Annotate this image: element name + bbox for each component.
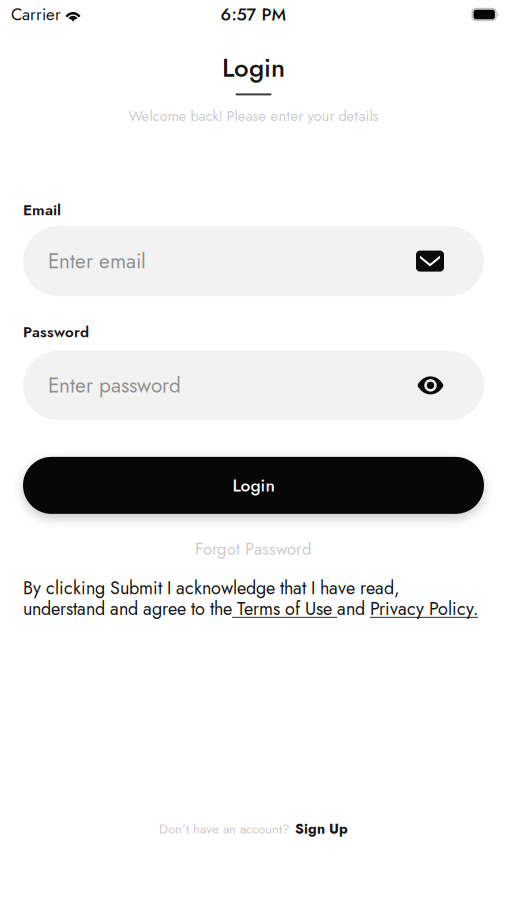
staticText: Enter password xyxy=(48,370,181,400)
staticText: 6:57 PM xyxy=(220,2,286,27)
staticText: Login xyxy=(222,49,285,86)
staticText: Sign Up xyxy=(295,819,348,839)
staticText: Email xyxy=(23,199,61,221)
button[interactable]: Sign Up xyxy=(295,819,348,839)
staticText: Login xyxy=(232,473,274,498)
staticText: understand and agree to the Terms of Use… xyxy=(23,596,478,622)
staticText: Carrier xyxy=(11,2,61,27)
staticText: Password xyxy=(23,321,89,343)
button[interactable]: Login xyxy=(23,457,484,514)
staticText: Enter email xyxy=(48,246,146,276)
staticText: Welcome back! Please enter your details xyxy=(128,105,378,127)
staticText: By clicking Submit I acknowledge that I … xyxy=(23,575,400,601)
button[interactable]: Forgot Password xyxy=(23,531,484,567)
staticText: Don't have an account? xyxy=(159,819,289,838)
staticText: Forgot Password xyxy=(195,537,312,561)
